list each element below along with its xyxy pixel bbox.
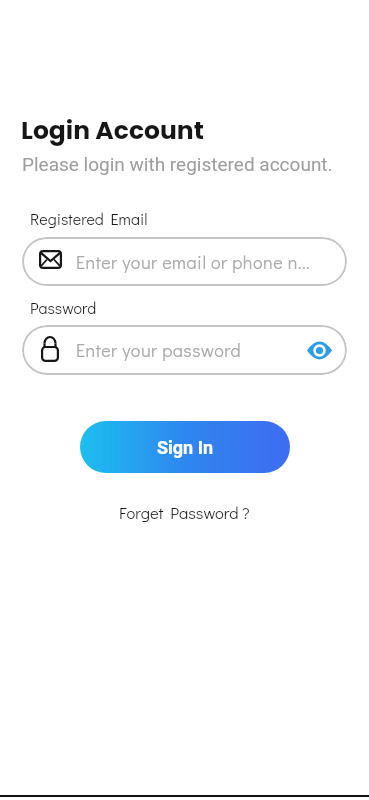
staticText: Enter your password bbox=[76, 338, 242, 362]
button[interactable]: Enter your email or phone n... bbox=[22, 237, 347, 286]
staticText: Login Account bbox=[21, 113, 204, 148]
staticText: Registered Email bbox=[30, 208, 148, 229]
staticText: Sign In bbox=[157, 437, 214, 458]
button[interactable]: Sign In bbox=[80, 421, 290, 473]
button[interactable]: Forget Password ? bbox=[119, 502, 250, 524]
staticText: Enter your email or phone n... bbox=[76, 250, 311, 274]
button[interactable]: Enter your password bbox=[22, 325, 347, 375]
staticText: Please login with registered account. bbox=[22, 153, 333, 175]
staticText: Password bbox=[30, 297, 97, 318]
